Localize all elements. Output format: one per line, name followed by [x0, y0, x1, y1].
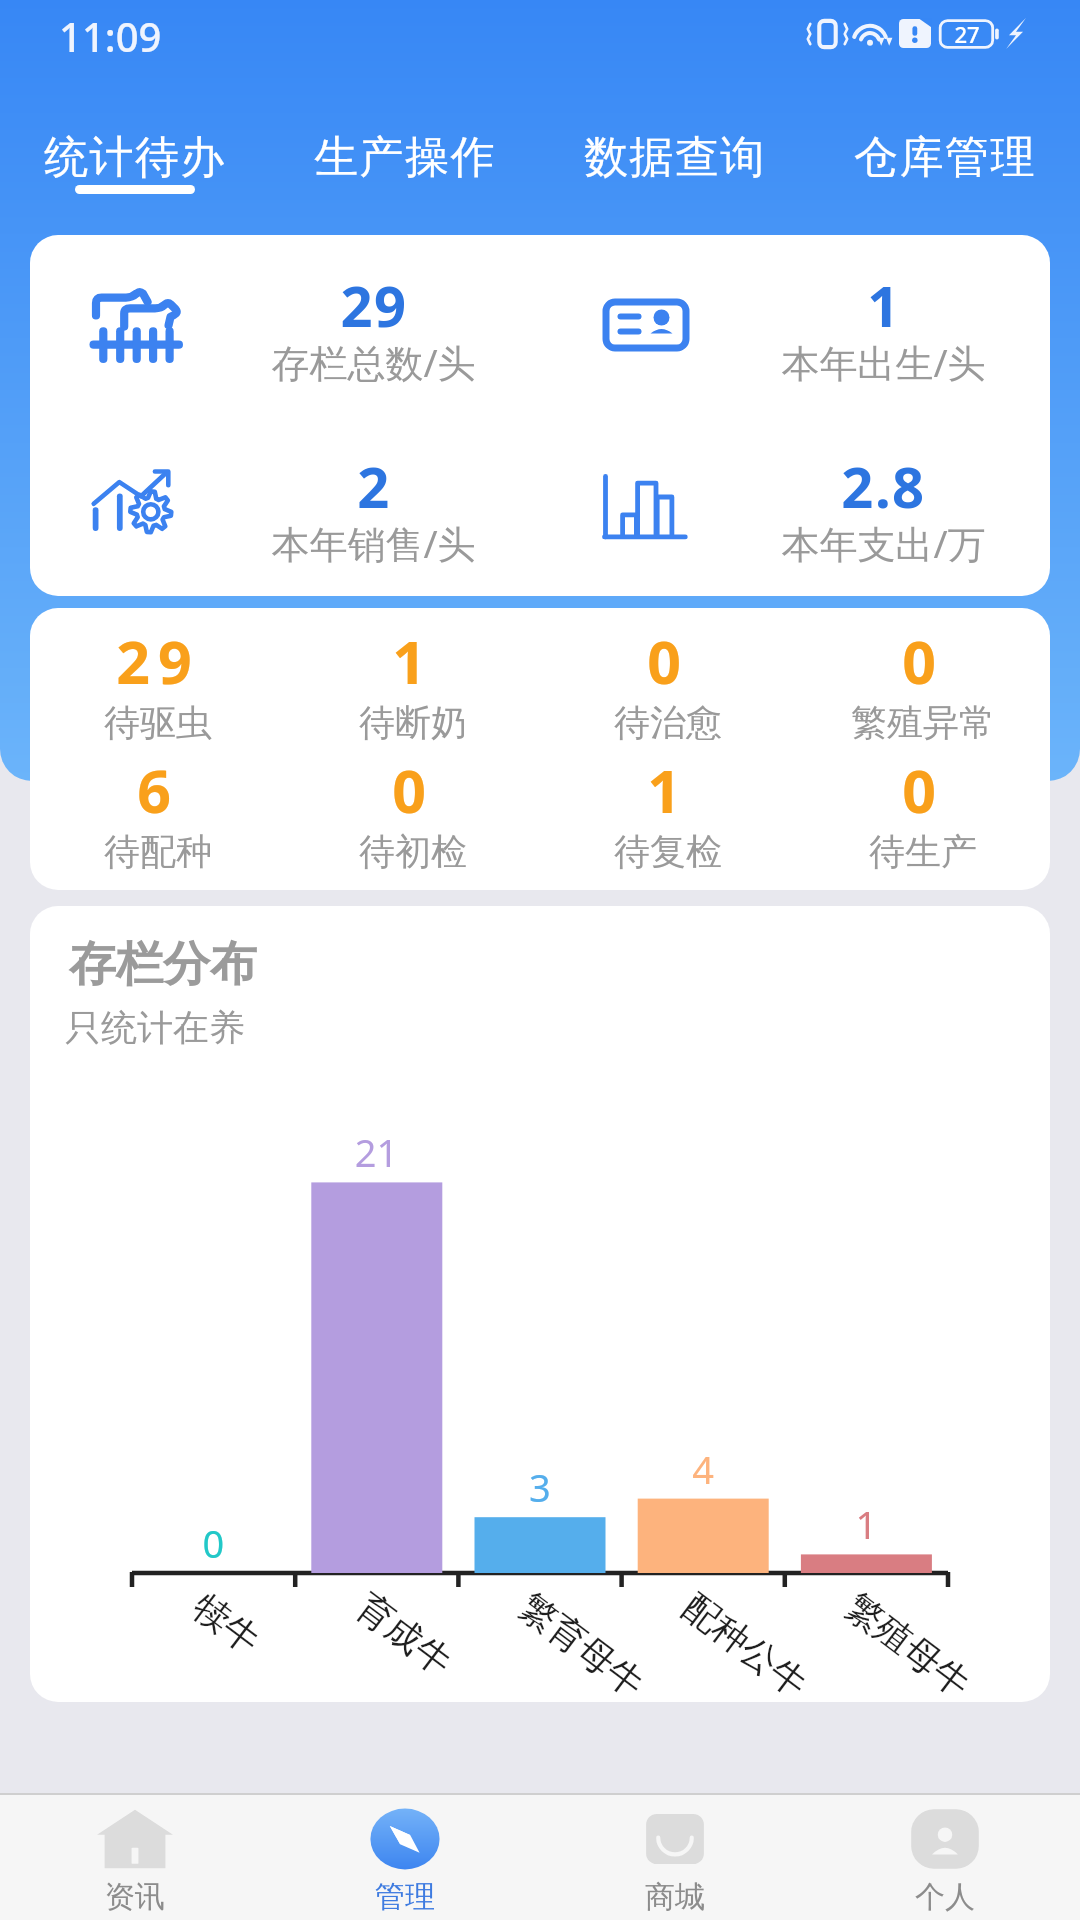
staticText: 27	[954, 19, 980, 47]
staticText: 资讯	[105, 1878, 165, 1916]
staticText: 本年销售/头	[271, 517, 476, 569]
staticText: 存栏总数/头	[271, 336, 476, 388]
button[interactable]: 29	[30, 608, 285, 737]
button[interactable]: 个人	[810, 1795, 1080, 1920]
staticText: 数据查询	[584, 130, 766, 185]
staticText: 本年支出/万	[781, 517, 986, 569]
staticText: 待断奶	[359, 700, 467, 745]
staticText: 1	[647, 750, 689, 830]
staticText: 2.8	[841, 448, 926, 524]
staticText: 只统计在养	[65, 1005, 245, 1050]
staticText: 存栏分布	[69, 935, 257, 994]
staticText: 统计待办	[44, 130, 226, 185]
staticText: 繁殖异常	[851, 700, 995, 745]
button[interactable]: 0	[540, 608, 795, 737]
button[interactable]: 生产操作	[270, 86, 540, 207]
staticText: 11:09	[59, 9, 162, 63]
staticText: 待驱虫	[104, 700, 212, 745]
button[interactable]: 资讯	[0, 1795, 270, 1920]
staticText: 商城	[645, 1878, 705, 1916]
button[interactable]: 29	[30, 235, 540, 415]
button[interactable]: 0	[285, 737, 540, 866]
staticText: 6	[137, 750, 179, 830]
staticText: 仓库管理	[854, 130, 1036, 185]
button[interactable]: 1	[540, 235, 1050, 415]
staticText: 待初检	[359, 829, 467, 874]
button[interactable]: 统计待办	[0, 86, 270, 207]
button[interactable]: 2.8	[540, 415, 1050, 596]
staticText: 0	[902, 621, 944, 701]
staticText: 待配种	[104, 829, 212, 874]
button[interactable]: 仓库管理	[810, 86, 1080, 207]
staticText: 2	[357, 448, 391, 524]
staticText: 0	[647, 621, 689, 701]
staticText: 管理	[375, 1878, 435, 1916]
staticText: 1	[867, 267, 901, 343]
staticText: 0	[902, 750, 944, 830]
button[interactable]: 2	[30, 415, 540, 596]
staticText: 待治愈	[614, 700, 722, 745]
button[interactable]: 商城	[540, 1795, 810, 1920]
button[interactable]: 0	[795, 737, 1050, 866]
staticText: 29	[116, 621, 200, 701]
button[interactable]: 0	[795, 608, 1050, 737]
button[interactable]: 1	[285, 608, 540, 737]
staticText: 本年出生/头	[781, 336, 986, 388]
button[interactable]: 管理	[270, 1795, 540, 1920]
staticText: 个人	[915, 1878, 975, 1916]
button[interactable]: 6	[30, 737, 285, 866]
staticText: 0	[392, 750, 434, 830]
staticText: 1	[392, 621, 434, 701]
button[interactable]: 1	[540, 737, 795, 866]
staticText: 待复检	[614, 829, 722, 874]
staticText: 待生产	[869, 829, 977, 874]
staticText: 29	[340, 267, 408, 343]
staticText: 生产操作	[314, 130, 496, 185]
button[interactable]: 数据查询	[540, 86, 810, 207]
